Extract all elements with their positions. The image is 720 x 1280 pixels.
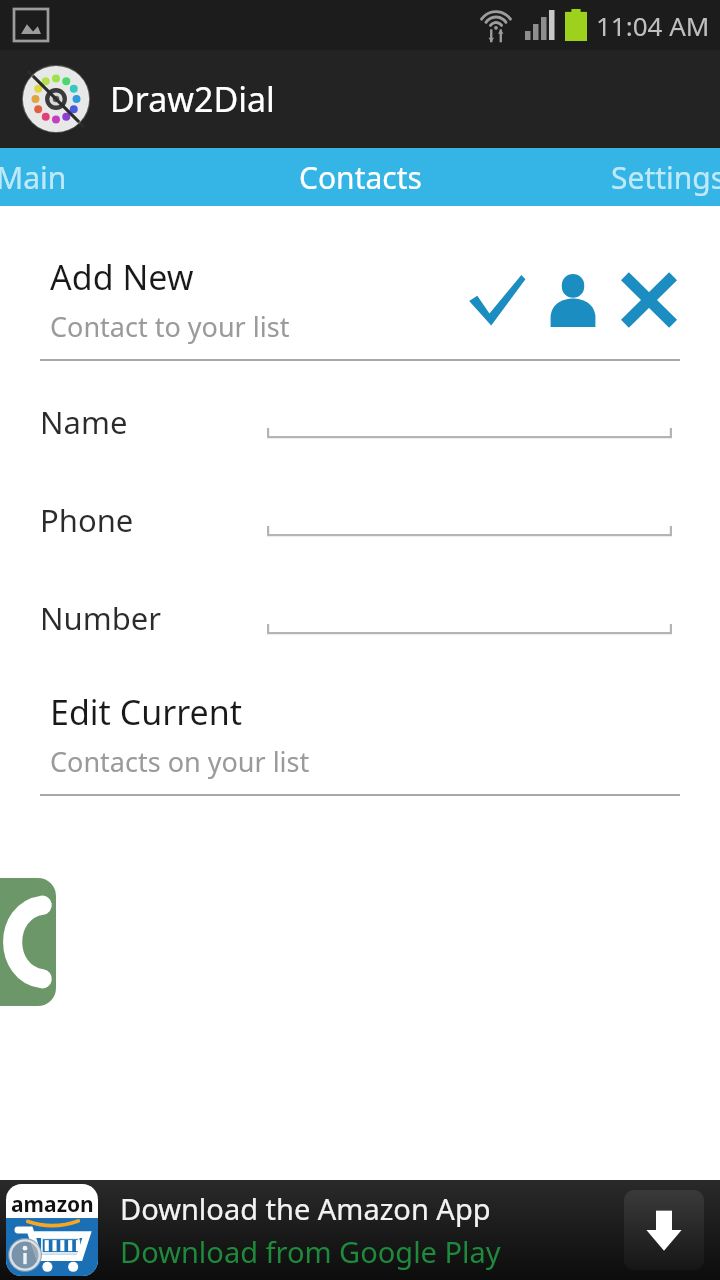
staticText: Settings <box>611 157 720 198</box>
button[interactable]: Name <box>0 395 720 449</box>
staticText: Download the Amazon App <box>120 1189 491 1228</box>
staticText: Contact to your list <box>50 308 290 345</box>
button[interactable]: amazon <box>0 1180 720 1280</box>
staticText: amazon <box>11 1190 94 1219</box>
staticText: Number <box>40 597 162 639</box>
staticText: Main <box>0 157 67 198</box>
staticText: 11:04 AM <box>596 8 710 43</box>
button[interactable]: Save contact <box>466 269 528 331</box>
button[interactable]: Download <box>624 1190 704 1270</box>
staticText: Contacts <box>299 157 422 198</box>
button[interactable]: Number <box>0 591 720 645</box>
button[interactable]: Contacts <box>240 148 480 206</box>
staticText: Draw2Dial <box>110 76 275 122</box>
button[interactable]: Dial <box>0 878 56 1006</box>
staticText: Name <box>40 401 128 443</box>
staticText: Phone <box>40 499 134 541</box>
staticText: Edit Current <box>50 689 243 735</box>
button[interactable]: Main <box>0 148 240 206</box>
staticText: Contacts on your list <box>50 743 310 780</box>
button[interactable]: Settings <box>480 148 720 206</box>
staticText: Download from Google Play <box>120 1232 501 1271</box>
button[interactable]: Phone <box>0 493 720 547</box>
button[interactable]: Pick contact <box>542 269 604 331</box>
button[interactable]: Cancel <box>618 269 680 331</box>
staticText: Add New <box>50 254 194 300</box>
